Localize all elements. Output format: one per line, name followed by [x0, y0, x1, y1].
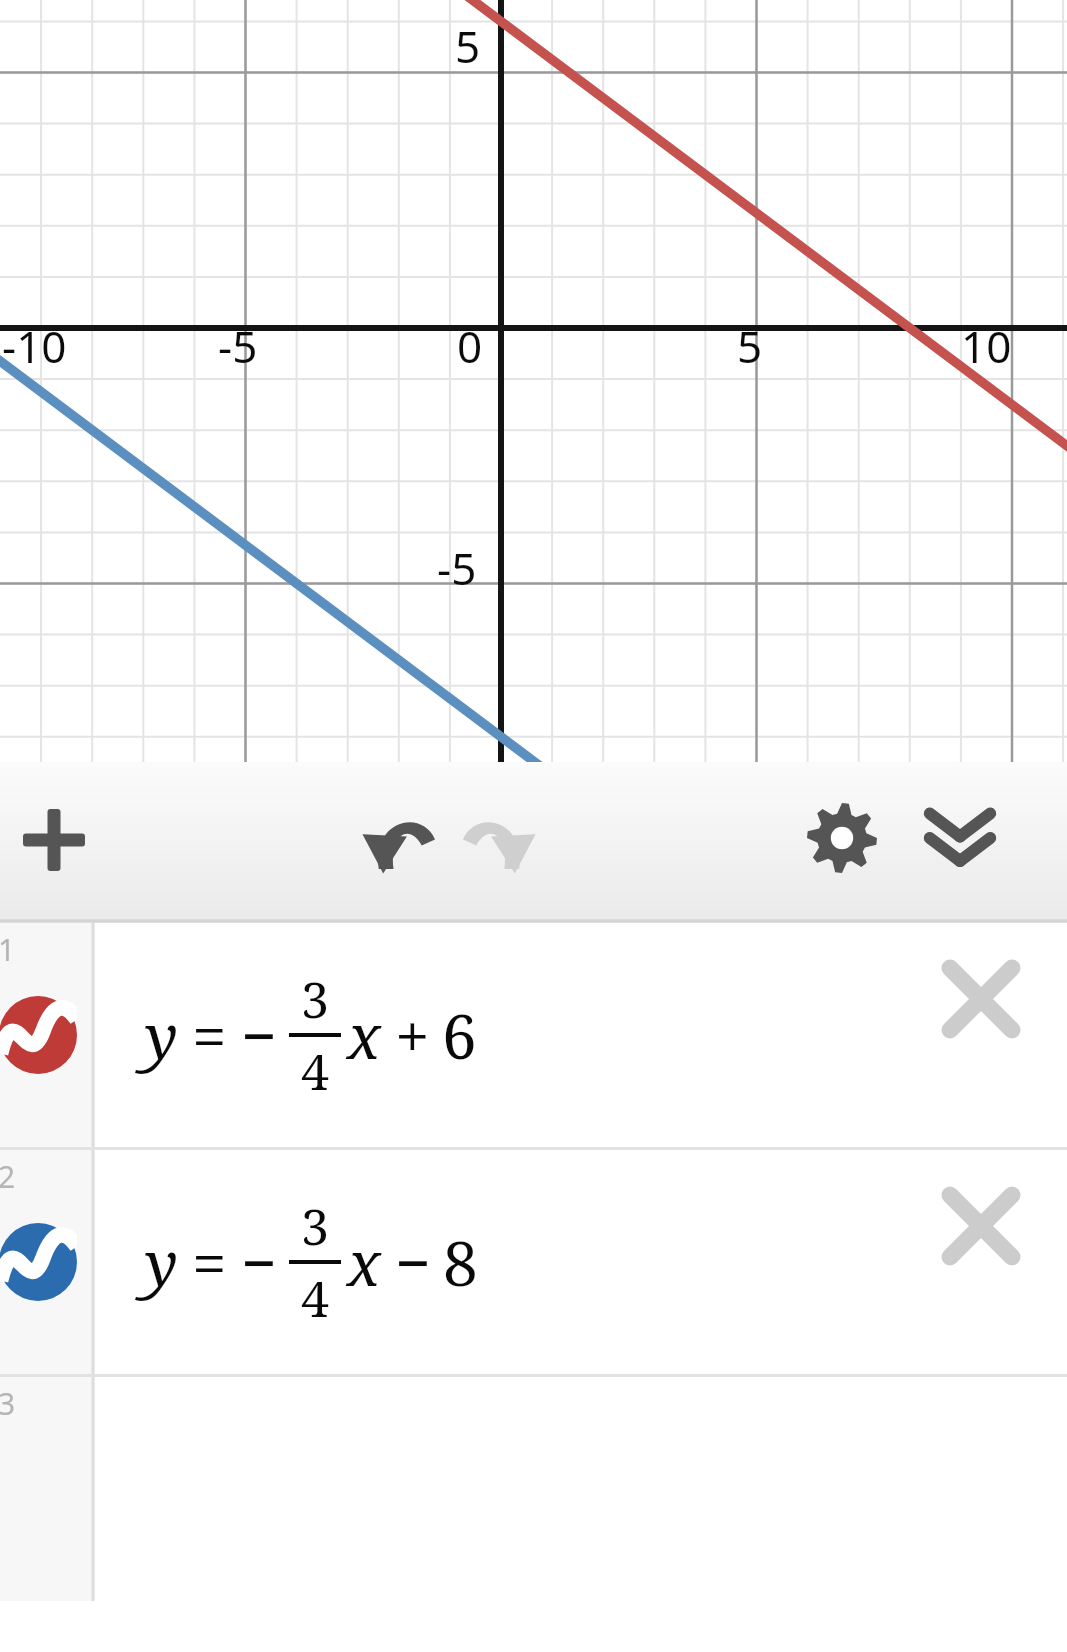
staticText: y: [145, 993, 178, 1077]
button[interactable]: Collapse: [910, 788, 1010, 888]
button[interactable]: Delete expression: [933, 1178, 1029, 1274]
staticText: =: [192, 993, 227, 1077]
staticText: 3: [301, 965, 329, 1033]
staticText: 5: [737, 316, 763, 376]
staticText: 1: [0, 929, 16, 970]
button[interactable]: Undo: [348, 788, 448, 888]
staticText: 3: [0, 1383, 16, 1424]
staticText: −: [241, 993, 277, 1077]
staticText: 10: [961, 316, 1012, 376]
staticText: 3: [301, 1192, 329, 1260]
button[interactable]: 3: [0, 1377, 1067, 1601]
staticText: x: [347, 993, 381, 1077]
staticText: 6: [442, 993, 477, 1077]
button[interactable]: Redo: [450, 788, 550, 888]
button[interactable]: Add expression: [4, 790, 104, 890]
staticText: −: [241, 1220, 277, 1304]
staticText: -5: [218, 316, 258, 376]
staticText: x: [347, 1220, 381, 1304]
staticText: y: [145, 1220, 178, 1304]
button[interactable]: 2: [0, 1150, 1067, 1374]
staticText: =: [192, 1220, 227, 1304]
button[interactable]: 1: [0, 923, 1067, 1147]
staticText: -10: [2, 316, 67, 376]
staticText: 0: [457, 316, 483, 376]
staticText: −: [395, 1220, 431, 1304]
staticText: 5: [455, 16, 481, 76]
staticText: 2: [0, 1156, 16, 1197]
staticText: 4: [301, 1037, 329, 1105]
staticText: 4: [301, 1264, 329, 1332]
button[interactable]: Toggle curve: [0, 1223, 77, 1301]
staticText: +: [395, 993, 430, 1077]
button[interactable]: Delete expression: [933, 951, 1029, 1047]
button[interactable]: Settings: [792, 788, 892, 888]
button[interactable]: Toggle curve: [0, 996, 77, 1074]
staticText: 8: [443, 1220, 478, 1304]
staticText: -5: [437, 538, 477, 598]
